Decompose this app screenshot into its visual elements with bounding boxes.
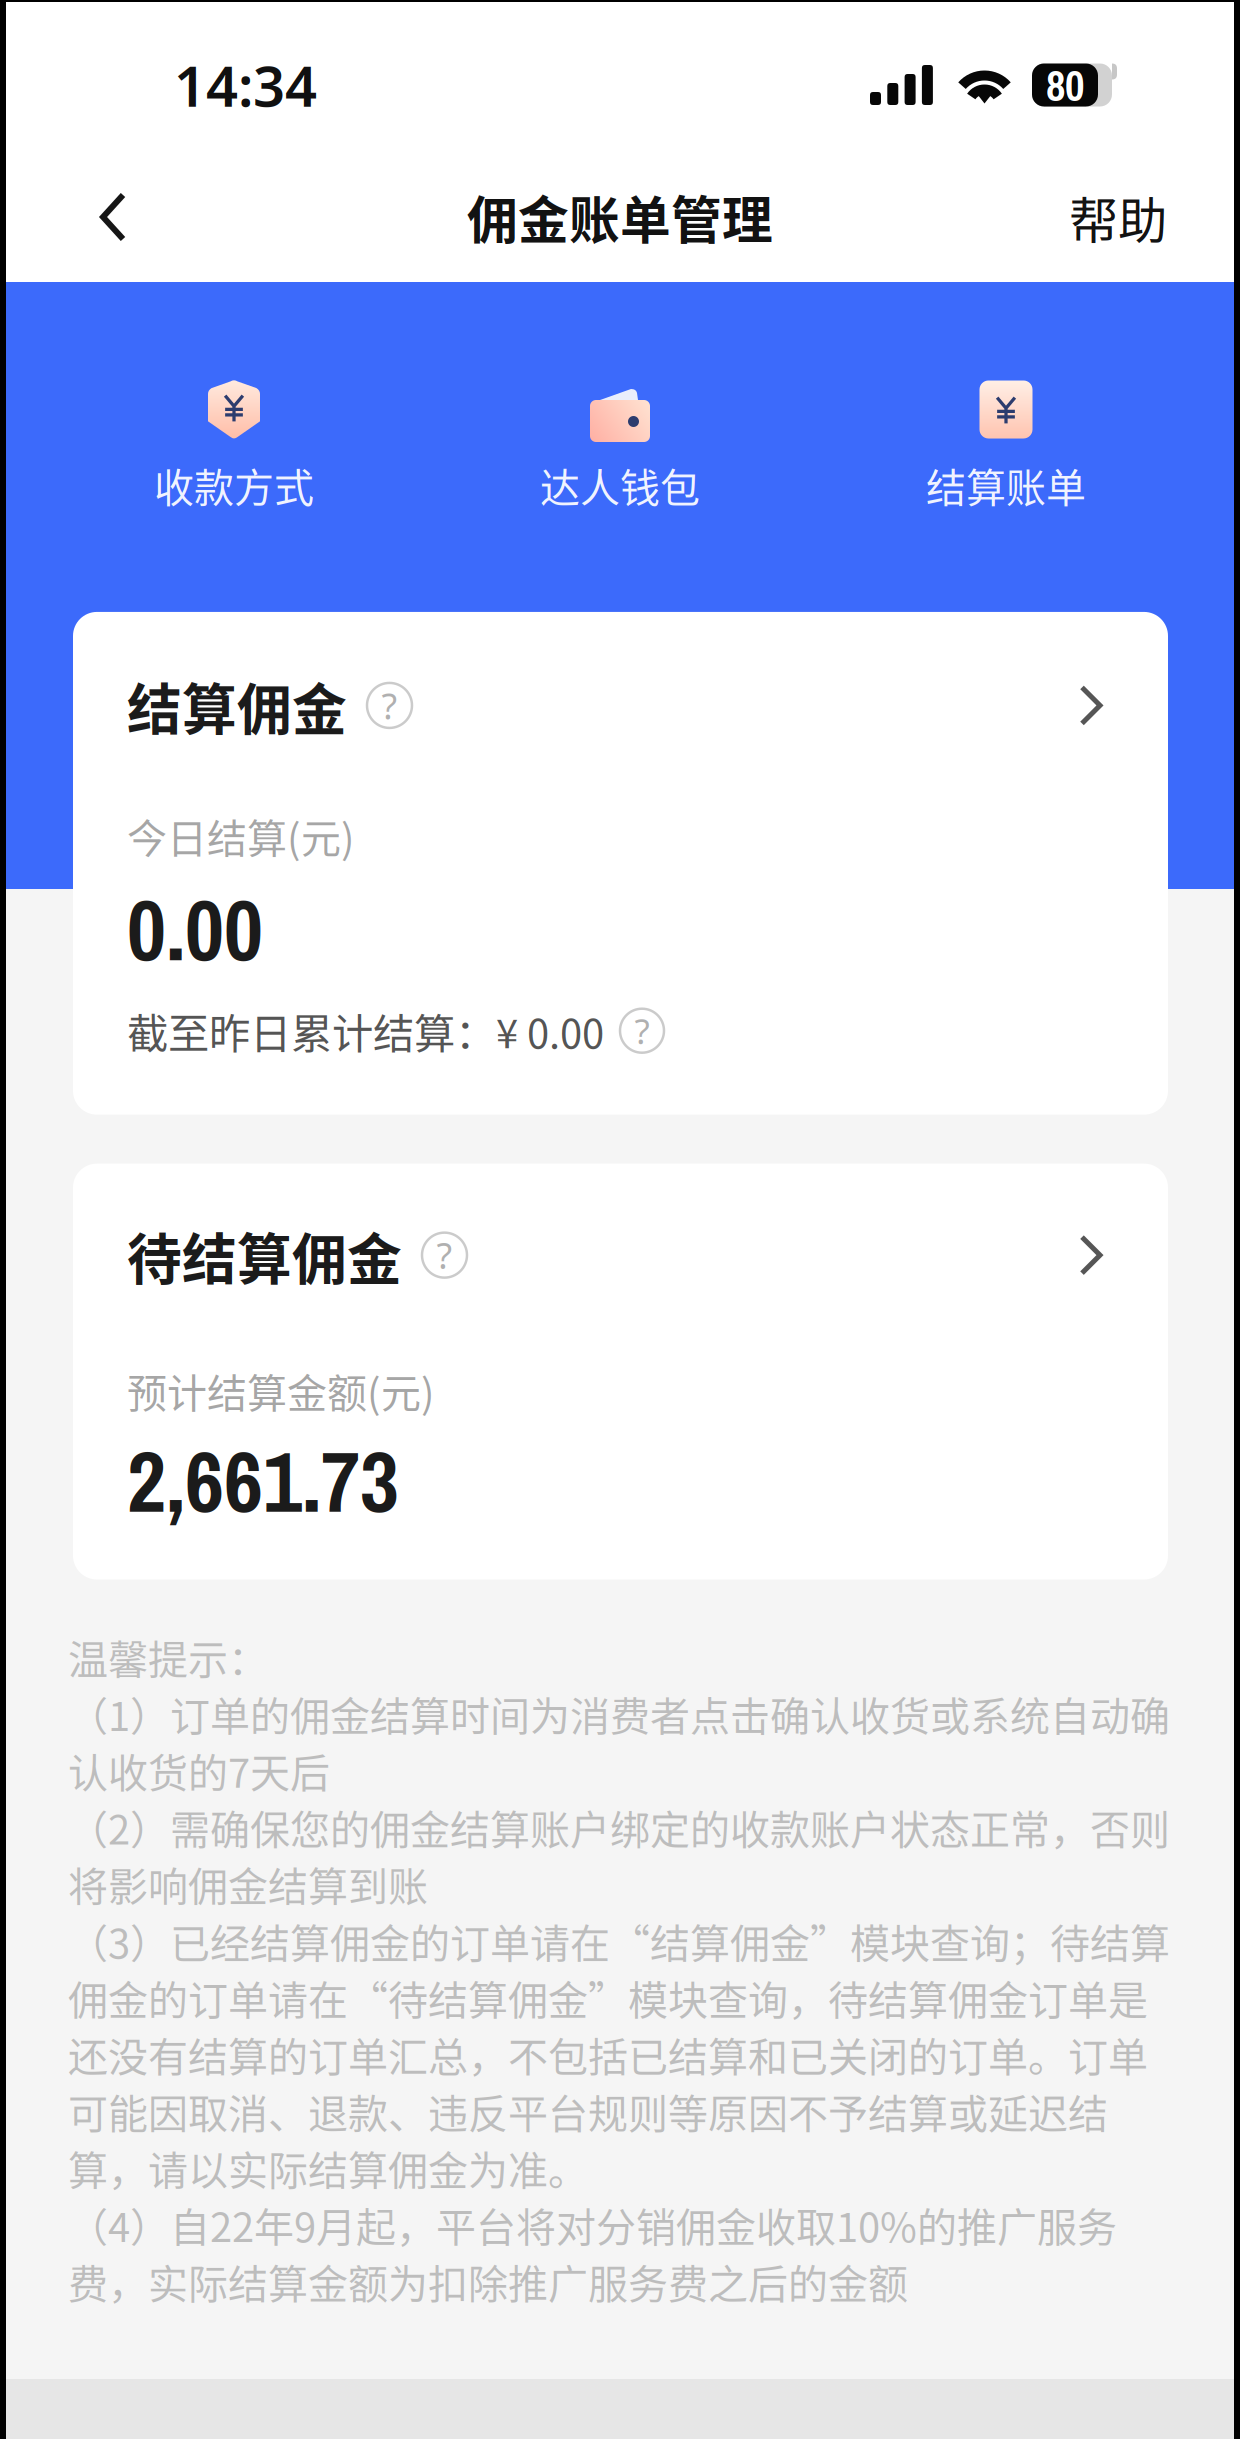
staticText: 待结算佣金 bbox=[127, 1216, 402, 1295]
button[interactable]: 结算佣金 bbox=[73, 612, 1168, 1115]
staticText: 80 bbox=[1046, 56, 1084, 114]
staticText: 截至昨日累计结算： bbox=[127, 1001, 496, 1061]
staticText: 佣金账单管理 bbox=[467, 180, 773, 254]
button[interactable]: 结算账单 bbox=[813, 380, 1199, 514]
button[interactable]: 返回 bbox=[6, 168, 174, 284]
staticText: ? bbox=[436, 1231, 452, 1280]
staticText: ? bbox=[634, 1007, 649, 1055]
button[interactable]: 待结算佣金 bbox=[73, 1164, 1168, 1579]
staticText: ? bbox=[381, 681, 397, 730]
staticText: 温馨提示： bbox=[68, 1628, 268, 1685]
staticText: 收款方式 bbox=[154, 456, 314, 514]
staticText: 结算账单 bbox=[926, 456, 1086, 514]
staticText: 预计结算金额(元) bbox=[127, 1362, 435, 1419]
staticText: 今日结算(元) bbox=[127, 807, 355, 865]
staticText: （1）订单的佣金结算时间为消费者点击确认收货或系统自动确认收货的7天后 bbox=[68, 1685, 1170, 1799]
staticText: 帮助 bbox=[1069, 181, 1167, 253]
button[interactable]: 帮助 bbox=[1029, 168, 1234, 284]
staticText: 2,661.73 bbox=[127, 1424, 399, 1538]
staticText: 14:34 bbox=[174, 47, 317, 123]
staticText: （2）需确保您的佣金结算账户绑定的收款账户状态正常，否则将影响佣金结算到账 bbox=[68, 1799, 1170, 1912]
button[interactable]: 达人钱包 bbox=[427, 380, 813, 514]
staticText: （3）已经结算佣金的订单请在“结算佣金”模块查询；待结算佣金的订单请在“待结算佣… bbox=[68, 1912, 1170, 2196]
staticText: 0.00 bbox=[127, 872, 263, 987]
staticText: 达人钱包 bbox=[540, 456, 700, 514]
button[interactable]: 收款方式 bbox=[41, 380, 427, 514]
staticText: 结算佣金 bbox=[127, 666, 347, 745]
staticText: （4）自22年9月起，平台将对分销佣金收取10%的推广服务费，实际结算金额为扣除… bbox=[68, 2196, 1117, 2310]
staticText: ¥ 0.00 bbox=[496, 1002, 604, 1060]
